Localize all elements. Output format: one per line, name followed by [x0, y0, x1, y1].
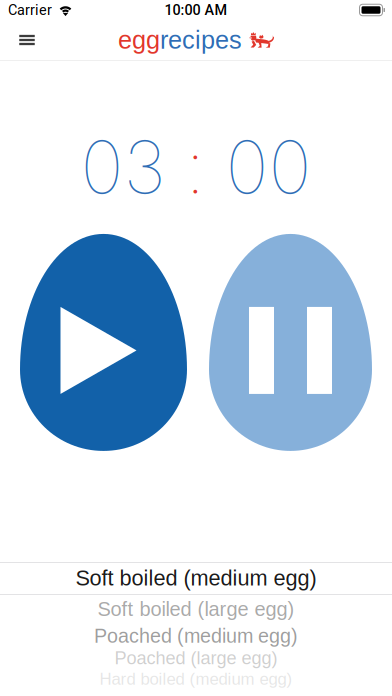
button[interactable]: Pause timer	[209, 234, 372, 451]
staticText: 03	[80, 123, 165, 211]
staticText: Poached (medium egg)	[94, 625, 298, 647]
button[interactable]: Start timer	[20, 234, 187, 451]
staticText: 00	[225, 123, 311, 211]
staticText: Soft boiled (large egg)	[97, 598, 294, 620]
button[interactable]: Poached (large egg)	[114, 645, 277, 671]
button[interactable]: Poached (medium egg)	[94, 623, 298, 649]
button[interactable]: Menu	[0, 21, 54, 59]
button[interactable]: Hard boiled (medium egg)	[99, 667, 292, 691]
staticText: Carrier	[8, 2, 52, 18]
staticText: recipes	[160, 26, 242, 54]
staticText: egg	[118, 26, 160, 54]
staticText: :	[185, 123, 205, 211]
button[interactable]: Soft boiled (medium egg)	[75, 564, 316, 592]
button[interactable]: Soft boiled (large egg)	[97, 595, 294, 622]
staticText: Hard boiled (medium egg)	[99, 670, 292, 688]
staticText: Poached (large egg)	[114, 648, 277, 668]
staticText: Soft boiled (medium egg)	[75, 566, 316, 590]
staticText: 10:00 AM	[164, 2, 227, 18]
